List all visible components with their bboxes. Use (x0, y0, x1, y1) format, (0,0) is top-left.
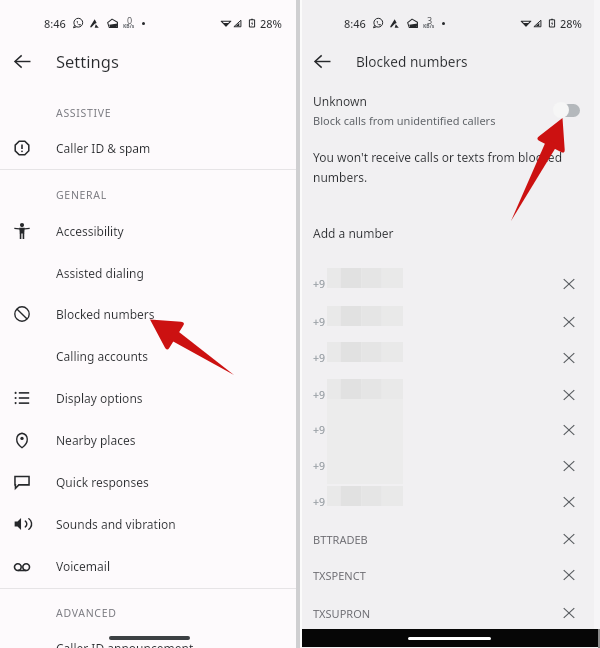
staticText: +9 (313, 495, 326, 509)
button[interactable]: Remove blocked number (555, 344, 583, 372)
button[interactable]: Remove blocked number (555, 525, 583, 553)
staticText: 3 (427, 14, 433, 26)
button[interactable]: Remove blocked number (555, 416, 583, 444)
button[interactable]: Calling accounts (0, 340, 297, 372)
button[interactable]: Accessibility (0, 215, 297, 247)
button[interactable]: Sounds and vibration (0, 508, 297, 540)
staticText: +9 (313, 351, 326, 365)
staticText: TXSPENCT (313, 568, 366, 583)
button[interactable]: +9 (300, 266, 600, 302)
button[interactable]: Remove blocked number (555, 488, 583, 516)
button[interactable]: Add a number (300, 220, 600, 246)
staticText: TXSUPRON (313, 606, 371, 621)
button[interactable]: Remove blocked number (555, 561, 583, 589)
button[interactable]: +9 (300, 412, 600, 448)
button[interactable]: +9 (300, 484, 600, 520)
staticText: Add a number (313, 225, 394, 241)
staticText: +9 (313, 388, 326, 402)
staticText: GENERAL (56, 188, 107, 202)
button[interactable]: Assisted dialing (0, 257, 297, 289)
staticText: KB/s (123, 23, 135, 30)
button[interactable]: Nearby places (0, 424, 297, 456)
button[interactable]: TXSUPRON (300, 595, 600, 631)
staticText: Voicemail (56, 558, 110, 574)
button[interactable]: TXSPENCT (300, 557, 600, 593)
button[interactable]: Back (0, 40, 44, 82)
staticText: Accessibility (56, 223, 124, 239)
staticText: BTTRADEB (313, 532, 368, 547)
staticText: KB/s (423, 23, 435, 30)
staticText: +9 (313, 315, 326, 329)
button[interactable]: Display options (0, 382, 297, 414)
button[interactable]: +9 (300, 304, 600, 340)
staticText: Settings (56, 50, 119, 72)
staticText: Blocked numbers (356, 52, 468, 71)
button[interactable]: Back (300, 40, 344, 82)
staticText: +9 (313, 459, 326, 473)
staticText: +9 (313, 423, 326, 437)
staticText: 8:46 (44, 16, 66, 31)
staticText: Caller ID announcement (56, 640, 194, 648)
button[interactable]: Remove blocked number (555, 452, 583, 480)
button[interactable]: Unknown (300, 90, 600, 130)
button[interactable]: Blocked numbers (0, 298, 297, 330)
staticText: Assisted dialing (56, 265, 144, 281)
staticText: Block calls from unidentified callers (313, 113, 496, 128)
button[interactable]: Remove blocked number (555, 599, 583, 627)
staticText: Nearby places (56, 432, 136, 448)
button[interactable]: +9 (300, 340, 600, 376)
staticText: Calling accounts (56, 348, 148, 364)
staticText: 0 (127, 14, 133, 26)
button[interactable]: Remove blocked number (555, 381, 583, 409)
staticText: 8:46 (344, 16, 366, 31)
button[interactable]: Remove blocked number (555, 270, 583, 298)
button[interactable]: Quick responses (0, 466, 297, 498)
staticText: Display options (56, 390, 143, 406)
staticText: Blocked numbers (56, 306, 155, 322)
staticText: You won't receive calls or texts from bl… (313, 149, 568, 185)
staticText: ADVANCED (56, 606, 117, 620)
button[interactable]: Caller ID & spam (0, 132, 297, 164)
button[interactable]: BTTRADEB (300, 521, 600, 557)
button[interactable]: Caller ID announcement (0, 632, 297, 648)
button[interactable]: +9 (300, 377, 600, 413)
staticText: Quick responses (56, 474, 149, 490)
button[interactable]: Remove blocked number (555, 308, 583, 336)
staticText: 28% (560, 16, 582, 31)
staticText: ASSISTIVE (56, 106, 112, 120)
staticText: +9 (313, 277, 326, 291)
staticText: Sounds and vibration (56, 516, 176, 532)
button[interactable]: Voicemail (0, 550, 297, 582)
staticText: 28% (260, 16, 282, 31)
button[interactable]: +9 (300, 448, 600, 484)
staticText: Caller ID & spam (56, 140, 151, 156)
staticText: Unknown (313, 93, 367, 109)
